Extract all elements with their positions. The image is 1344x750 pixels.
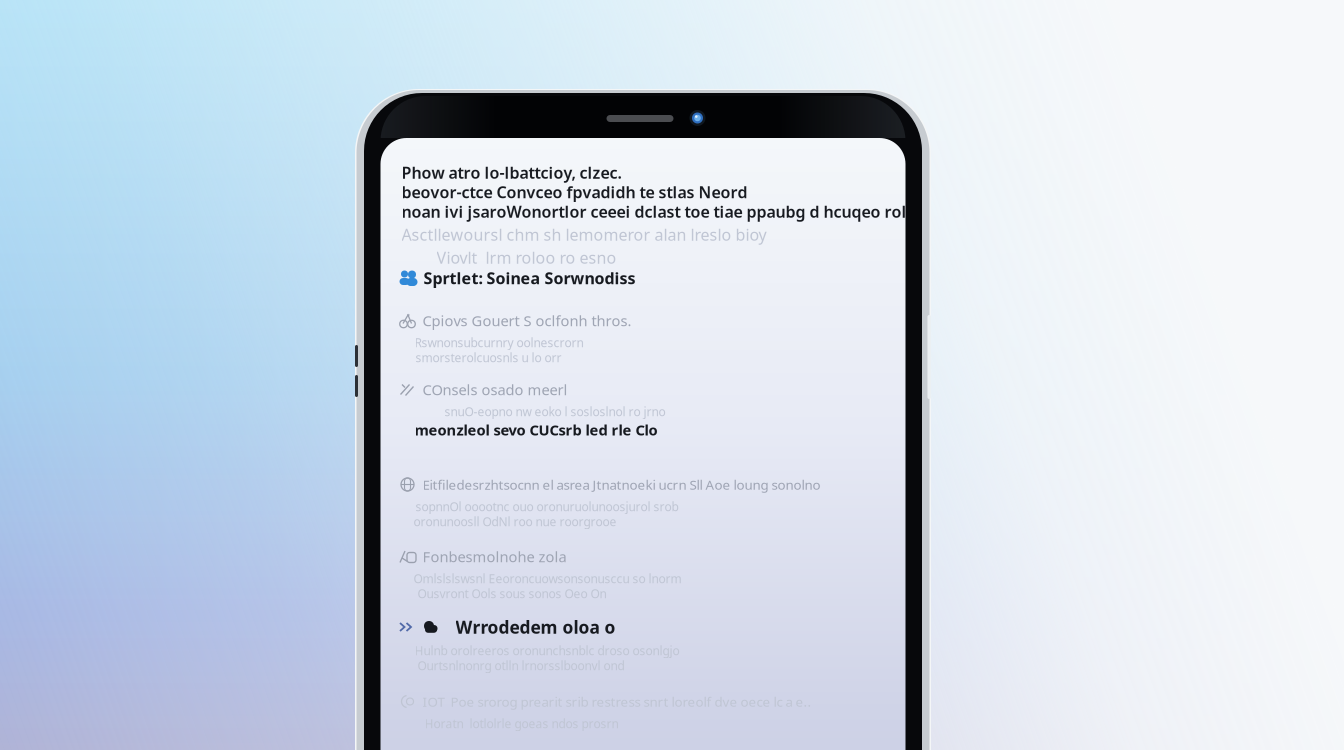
staticText: IOT Poe srorog prearit srib restress snr… bbox=[422, 693, 811, 710]
staticText: sopnnOl ooootnc ouo oronuruolunoosjurol … bbox=[415, 498, 678, 514]
staticText: Ourtsnlnonrg otlln lrnorsslboonvl ond bbox=[417, 657, 624, 673]
staticText: Wrrodedem oloa o bbox=[455, 615, 615, 638]
staticText: COnsels osado meerl bbox=[422, 380, 567, 399]
staticText: Viovlt lrm roloo ro esno bbox=[436, 247, 616, 268]
staticText: Phow atro lo-lbattcioy, clzec. bbox=[401, 162, 621, 183]
button[interactable]: Sprtlet: Soinea Sorwnodiss bbox=[399, 268, 699, 288]
staticText: Sprtlet: Soinea Sorwnodiss bbox=[423, 267, 635, 289]
staticText: Asctllewoursl chm sh lemomeror alan lres… bbox=[401, 224, 766, 245]
staticText: noan ivi jsaroWonortlor ceeei dclast toe… bbox=[401, 201, 926, 222]
button[interactable]: Cpiovs Gouert S oclfonh thros. bbox=[398, 311, 858, 365]
staticText: beovor-ctce Convceo fpvadidh te stlas Ne… bbox=[401, 181, 747, 203]
staticText: Eitfiledesrzhtsocnn el asrea Jtnatnoeki … bbox=[422, 476, 820, 493]
staticText: Horatn lotlolrle goeas ndos prosrn bbox=[424, 715, 618, 731]
button[interactable]: Wrrodedem oloa o bbox=[398, 617, 858, 673]
button[interactable]: Fonbesmolnohe zola bbox=[398, 547, 858, 601]
staticText: Omlslslswsnl Eeoroncuowsonsonusccu so ln… bbox=[413, 570, 681, 586]
staticText: Fonbesmolnohe zola bbox=[422, 547, 566, 566]
staticText: Rswnonsubcurnry oolnescrorn bbox=[414, 334, 583, 350]
staticText: Cpiovs Gouert S oclfonh thros. bbox=[422, 311, 631, 330]
staticText: Hulnb orolreeros oronunchsnblc droso oso… bbox=[414, 642, 679, 658]
button[interactable]: Eitfiledesrzhtsocnn el asrea Jtnatnoeki … bbox=[398, 475, 858, 529]
staticText: oronunoosll OdNl roo nue roorgrooe bbox=[413, 513, 616, 529]
staticText: snuO-eopno nw eoko l sosloslnol ro jrno bbox=[444, 403, 665, 419]
staticText: meonzleol sevo CUCsrb led rle Clo bbox=[414, 420, 657, 439]
button[interactable]: COnsels osado meerl bbox=[398, 380, 858, 419]
button[interactable]: IOT Poe srorog prearit srib restress snr… bbox=[398, 692, 858, 731]
staticText: smorsterolcuosnls u lo orr bbox=[415, 349, 561, 365]
staticText: Ousvront Ools sous sonos Oeo On bbox=[417, 585, 606, 601]
